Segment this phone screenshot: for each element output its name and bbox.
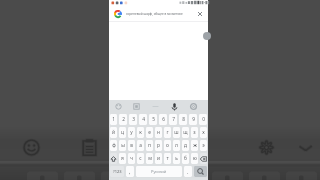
staticText: л [175, 142, 178, 149]
button[interactable]: н [155, 127, 162, 138]
staticText: ш [174, 129, 179, 136]
staticText: й [112, 129, 115, 136]
button[interactable]: з [191, 127, 198, 138]
button[interactable]: Emoji [114, 102, 123, 111]
button[interactable]: щ [182, 127, 189, 138]
button[interactable]: . [184, 166, 192, 177]
button[interactable]: ш [173, 127, 180, 138]
button[interactable]: г [164, 127, 171, 138]
button[interactable]: ь [173, 153, 180, 164]
button[interactable]: б [182, 153, 189, 164]
button[interactable]: Emoji [22, 138, 41, 157]
staticText: 5 [152, 116, 155, 123]
button[interactable]: л [173, 140, 180, 151]
staticText: и [157, 155, 160, 162]
staticText: к [139, 129, 142, 136]
staticText: я [121, 155, 124, 162]
button[interactable]: й [110, 127, 117, 138]
staticText: 0 [202, 116, 205, 123]
staticText: 7 [172, 116, 175, 123]
button[interactable]: а [137, 140, 144, 151]
staticText: , [129, 168, 131, 175]
button[interactable]: 2 [119, 114, 127, 125]
button[interactable]: 9 [189, 114, 197, 125]
button[interactable]: к [137, 127, 144, 138]
staticText: Русский [151, 169, 167, 174]
button[interactable]: Русский [136, 166, 182, 177]
staticText: 1 [112, 116, 115, 123]
staticText: б [184, 155, 187, 162]
button[interactable]: Stickers [132, 102, 141, 111]
button[interactable]: м [146, 153, 153, 164]
staticText: щ [183, 129, 188, 136]
button[interactable]: т [164, 153, 171, 164]
button[interactable]: с [137, 153, 144, 164]
button[interactable]: 8 [179, 114, 187, 125]
staticText: х [202, 129, 205, 136]
staticText: в [130, 142, 133, 149]
button[interactable]: ч [128, 153, 135, 164]
staticText: м [148, 155, 152, 162]
staticText: ф [112, 142, 116, 149]
button[interactable]: ф [110, 140, 117, 151]
button[interactable]: 1 [110, 114, 117, 125]
staticText: ж [193, 142, 197, 149]
button[interactable]: сиреневый шарф, общее в косметике [109, 7, 208, 21]
button[interactable]: у [128, 127, 135, 138]
button[interactable]: Settings [189, 102, 198, 111]
staticText: 4 [142, 116, 145, 123]
staticText: з [193, 129, 196, 136]
staticText: ь [175, 155, 178, 162]
button[interactable]: Search [194, 166, 207, 177]
staticText: е [148, 129, 151, 136]
button[interactable]: Settings [257, 138, 276, 157]
button[interactable]: 7 [169, 114, 177, 125]
button[interactable]: , [126, 166, 134, 177]
button[interactable]: Clipboard [80, 138, 99, 157]
button[interactable]: е [146, 127, 153, 138]
button[interactable]: в [128, 140, 135, 151]
staticText: ч [130, 155, 133, 162]
staticText: ю [193, 155, 197, 162]
button[interactable]: х [200, 127, 207, 138]
staticText: с [139, 155, 142, 162]
staticText: . [187, 168, 189, 175]
button[interactable]: п [146, 140, 153, 151]
staticText: у [130, 129, 133, 136]
button[interactable]: э [200, 140, 207, 151]
staticText: ?123 [113, 169, 122, 174]
button[interactable]: о [164, 140, 171, 151]
button[interactable]: ю [191, 153, 198, 164]
staticText: ц [121, 129, 124, 136]
staticText: р [157, 142, 160, 149]
staticText: н [157, 129, 160, 136]
button[interactable]: д [182, 140, 189, 151]
button[interactable]: ц [119, 127, 126, 138]
button[interactable]: More [151, 102, 160, 111]
button[interactable]: Clear search [195, 9, 205, 19]
staticText: д [184, 142, 187, 149]
staticText: 8 [182, 116, 185, 123]
button[interactable]: ?123 [110, 166, 124, 177]
button[interactable]: Backspace [200, 153, 207, 164]
staticText: 2 [122, 116, 125, 123]
button[interactable]: 6 [159, 114, 167, 125]
staticText: 6 [162, 116, 165, 123]
button[interactable]: я [119, 153, 126, 164]
staticText: п [148, 142, 151, 149]
button[interactable]: Voice input [170, 102, 179, 111]
button[interactable]: ж [191, 140, 198, 151]
button[interactable]: 0 [199, 114, 207, 125]
button[interactable]: Collapse [296, 138, 315, 157]
staticText: сиреневый шарф, общее в косметике [126, 12, 183, 16]
staticText: э [202, 142, 205, 149]
button[interactable]: 3 [129, 114, 137, 125]
button[interactable]: 4 [139, 114, 147, 125]
button[interactable]: Shift [110, 153, 117, 164]
staticText: 3 [132, 116, 135, 123]
button[interactable]: ы [119, 140, 126, 151]
button[interactable]: и [155, 153, 162, 164]
button[interactable]: р [155, 140, 162, 151]
button[interactable]: 5 [149, 114, 157, 125]
staticText: о [166, 142, 169, 149]
